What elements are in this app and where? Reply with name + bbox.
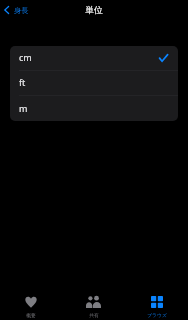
button[interactable]: Sharing [62, 290, 125, 318]
staticText: ブラウズ [147, 312, 167, 318]
staticText: ft [19, 76, 26, 88]
staticText: 単位 [85, 5, 103, 16]
staticText: 概要 [26, 312, 36, 318]
button[interactable]: ft [10, 71, 178, 95]
button[interactable]: cm [10, 46, 178, 70]
button[interactable]: m [10, 96, 178, 121]
button[interactable]: Back to 身長 [0, 3, 37, 18]
staticText: 共有 [89, 312, 99, 318]
button[interactable]: Summary [0, 290, 62, 318]
staticText: m [19, 102, 28, 114]
staticText: cm [19, 51, 32, 63]
button[interactable]: Browse [125, 290, 188, 318]
staticText: 身長 [14, 6, 29, 15]
